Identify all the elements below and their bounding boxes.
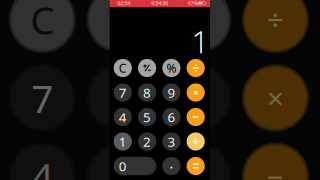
button[interactable]: %: [162, 59, 180, 77]
button[interactable]: 6: [162, 108, 180, 126]
button[interactable]: Multiply: [187, 83, 205, 102]
button[interactable]: Equals: [187, 157, 205, 175]
staticText: −: [267, 157, 284, 180]
button[interactable]: 9: [162, 83, 180, 102]
staticText: 4: [31, 151, 53, 180]
button[interactable]: 0: [114, 157, 156, 175]
staticText: 47%: [187, 0, 198, 7]
staticText: 7: [31, 72, 53, 123]
staticText: 4: [119, 108, 127, 126]
staticText: C: [119, 60, 127, 76]
staticText: 6: [167, 108, 175, 126]
staticText: C: [30, 0, 54, 45]
button[interactable]: Divide: [187, 59, 205, 77]
button[interactable]: 1: [114, 132, 132, 151]
staticText: ×: [267, 78, 284, 117]
button[interactable]: 3: [162, 132, 180, 151]
staticText: 9: [167, 84, 175, 101]
button[interactable]: Toggle sign: [138, 59, 156, 77]
staticText: 1: [191, 21, 209, 62]
staticText: 5: [143, 108, 151, 126]
button[interactable]: 4: [114, 108, 132, 126]
button[interactable]: C: [114, 59, 132, 77]
button[interactable]: 8: [138, 83, 156, 102]
staticText: 2: [143, 133, 151, 150]
button[interactable]: Decimal point: [162, 157, 180, 175]
button[interactable]: 7: [114, 83, 132, 102]
staticText: 1: [119, 133, 127, 150]
staticText: 8: [143, 84, 151, 101]
staticText: 02:34: [117, 0, 130, 7]
staticText: ÷: [267, 0, 284, 39]
button[interactable]: 2: [138, 132, 156, 151]
button[interactable]: Add: [187, 132, 205, 151]
button[interactable]: 5: [138, 108, 156, 126]
staticText: 3: [167, 133, 175, 150]
staticText: 7: [119, 84, 127, 101]
staticText: 0: [119, 157, 127, 175]
staticText: 9:34:30: [151, 0, 168, 7]
staticText: %: [166, 60, 176, 76]
button[interactable]: Subtract: [187, 108, 205, 126]
